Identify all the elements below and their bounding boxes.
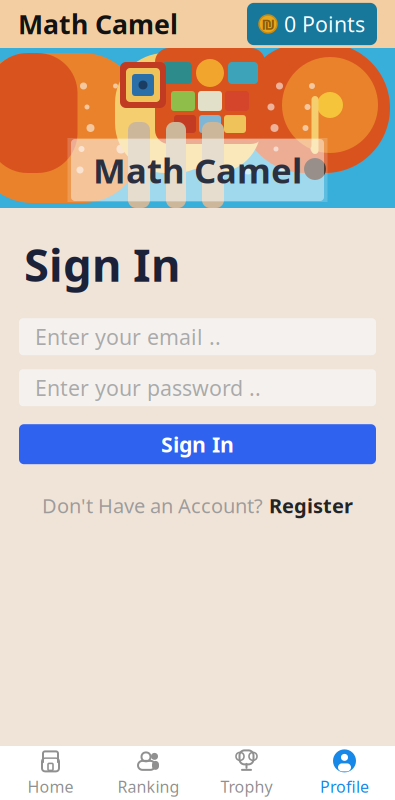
button[interactable]: Ranking [99, 746, 197, 800]
staticText: Sign In [24, 234, 180, 294]
staticText: Trophy [220, 776, 272, 797]
staticText: ₪ [261, 14, 274, 34]
staticText: 0 Points [284, 10, 365, 38]
staticText: Don't Have an Account? [42, 492, 263, 519]
staticText: Register [269, 492, 353, 519]
button[interactable]: Profile [295, 746, 393, 800]
button[interactable]: Enter your email .. [19, 318, 376, 355]
staticText: Enter your email .. [35, 322, 221, 351]
staticText: Sign In [161, 430, 234, 458]
button[interactable]: Enter your password .. [19, 369, 376, 406]
button[interactable]: Sign In [19, 424, 376, 464]
staticText: Ranking [117, 776, 179, 797]
staticText: Math Camel [93, 147, 302, 193]
staticText: Profile [320, 776, 369, 797]
button[interactable]: Home [1, 746, 99, 800]
button[interactable]: Don't Have an Account? [32, 488, 363, 523]
staticText: Enter your password .. [35, 373, 261, 402]
staticText: Math Camel [18, 6, 178, 42]
button[interactable]: Trophy [197, 746, 295, 800]
button[interactable]: ₪ [247, 3, 377, 45]
staticText: Home [27, 776, 73, 797]
